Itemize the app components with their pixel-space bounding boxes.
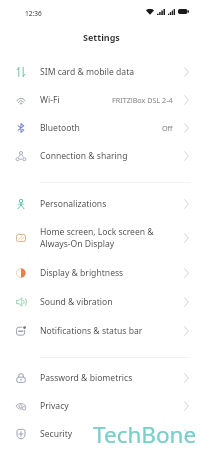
staticText: Notifications & status bar: [40, 325, 184, 337]
staticText: FRITZ!Box DSL 2-4: [112, 95, 173, 105]
button[interactable]: SIM card & mobile data: [0, 58, 202, 86]
button[interactable]: Notifications & status bar: [0, 316, 202, 345]
staticText: Bluetooth: [40, 122, 162, 134]
button[interactable]: Bluetooth: [0, 114, 202, 142]
staticText: Display & brightness: [40, 267, 184, 279]
button[interactable]: Connection & sharing: [0, 142, 202, 170]
button[interactable]: Password & biometrics: [0, 364, 202, 392]
staticText: Home screen, Lock screen & Always-On Dis…: [40, 226, 184, 250]
staticText: 12:36: [25, 9, 42, 18]
staticText: Off: [162, 123, 173, 133]
button[interactable]: Home screen, Lock screen & Always-On Dis…: [0, 218, 202, 258]
staticText: SIM card & mobile data: [40, 66, 184, 78]
staticText: TechBone: [93, 419, 197, 450]
staticText: Personalizations: [40, 198, 184, 210]
button[interactable]: Display & brightness: [0, 258, 202, 287]
button[interactable]: Wi-Fi: [0, 86, 202, 114]
staticText: Sound & vibration: [40, 296, 184, 308]
button[interactable]: Sound & vibration: [0, 287, 202, 316]
button[interactable]: Privacy: [0, 392, 202, 420]
staticText: Wi-Fi: [40, 94, 112, 106]
staticText: Security: [40, 428, 184, 440]
staticText: Connection & sharing: [40, 150, 184, 162]
staticText: Settings: [83, 31, 120, 43]
button[interactable]: Security: [0, 420, 202, 448]
button[interactable]: Personalizations: [0, 190, 202, 218]
staticText: Password & biometrics: [40, 372, 184, 384]
staticText: Privacy: [40, 400, 184, 412]
